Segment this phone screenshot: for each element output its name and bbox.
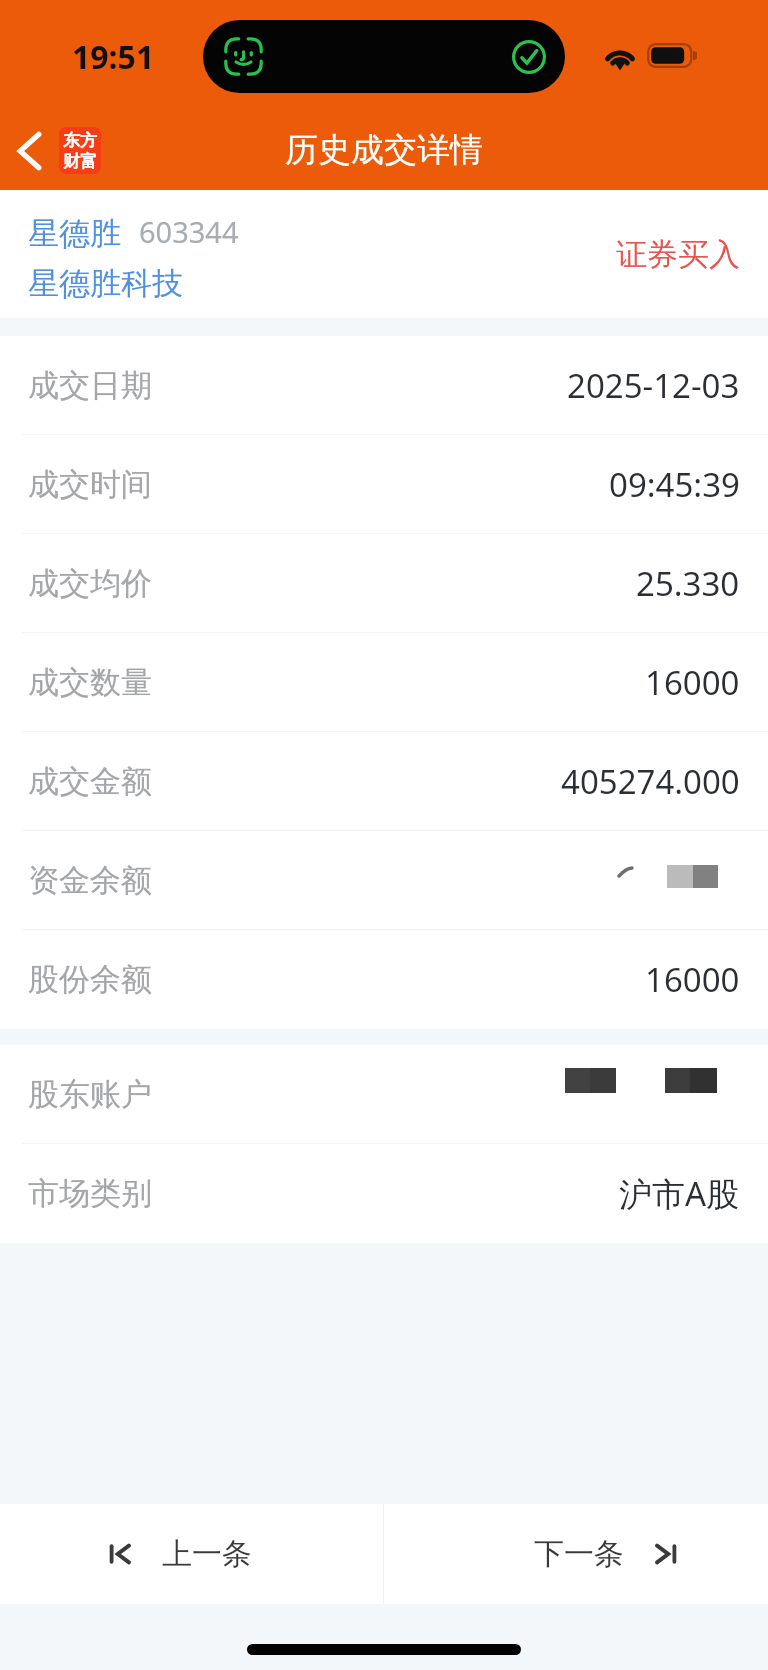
staticText: 16000: [645, 660, 740, 705]
staticText: 上一条: [162, 1535, 252, 1573]
staticText: 股份余额: [28, 960, 152, 999]
staticText: 09:45:39: [609, 462, 740, 507]
staticText: 股东账户: [28, 1075, 152, 1114]
staticText: 星德胜科技: [28, 264, 183, 303]
button[interactable]: 星德胜: [0, 202, 267, 307]
staticText: 16000: [645, 957, 740, 1002]
staticText: 下一条: [534, 1535, 624, 1573]
button[interactable]: 上一条: [0, 1504, 383, 1604]
staticText: 星德胜: [28, 214, 121, 253]
staticText: 成交时间: [28, 465, 152, 504]
button[interactable]: 返回 东方财富: [0, 119, 113, 182]
staticText: 成交日期: [28, 366, 152, 405]
staticText: 资金余额: [28, 861, 152, 900]
staticText: 405274.000: [561, 759, 740, 804]
button[interactable]: 下一条: [384, 1504, 768, 1604]
staticText: 东方: [63, 130, 97, 151]
staticText: 2025-12-03: [567, 363, 740, 408]
staticText: 成交金额: [28, 762, 152, 801]
staticText: 603344: [139, 212, 239, 251]
staticText: 25.330: [636, 561, 740, 606]
staticText: 成交均价: [28, 564, 152, 603]
staticText: 历史成交详情: [285, 129, 483, 171]
staticText: 证券买入: [616, 235, 740, 274]
staticText: 财富: [63, 151, 97, 172]
staticText: 市场类别: [28, 1174, 152, 1213]
staticText: 沪市A股: [619, 1171, 740, 1216]
staticText: 成交数量: [28, 663, 152, 702]
staticText: 19:51: [72, 35, 155, 79]
